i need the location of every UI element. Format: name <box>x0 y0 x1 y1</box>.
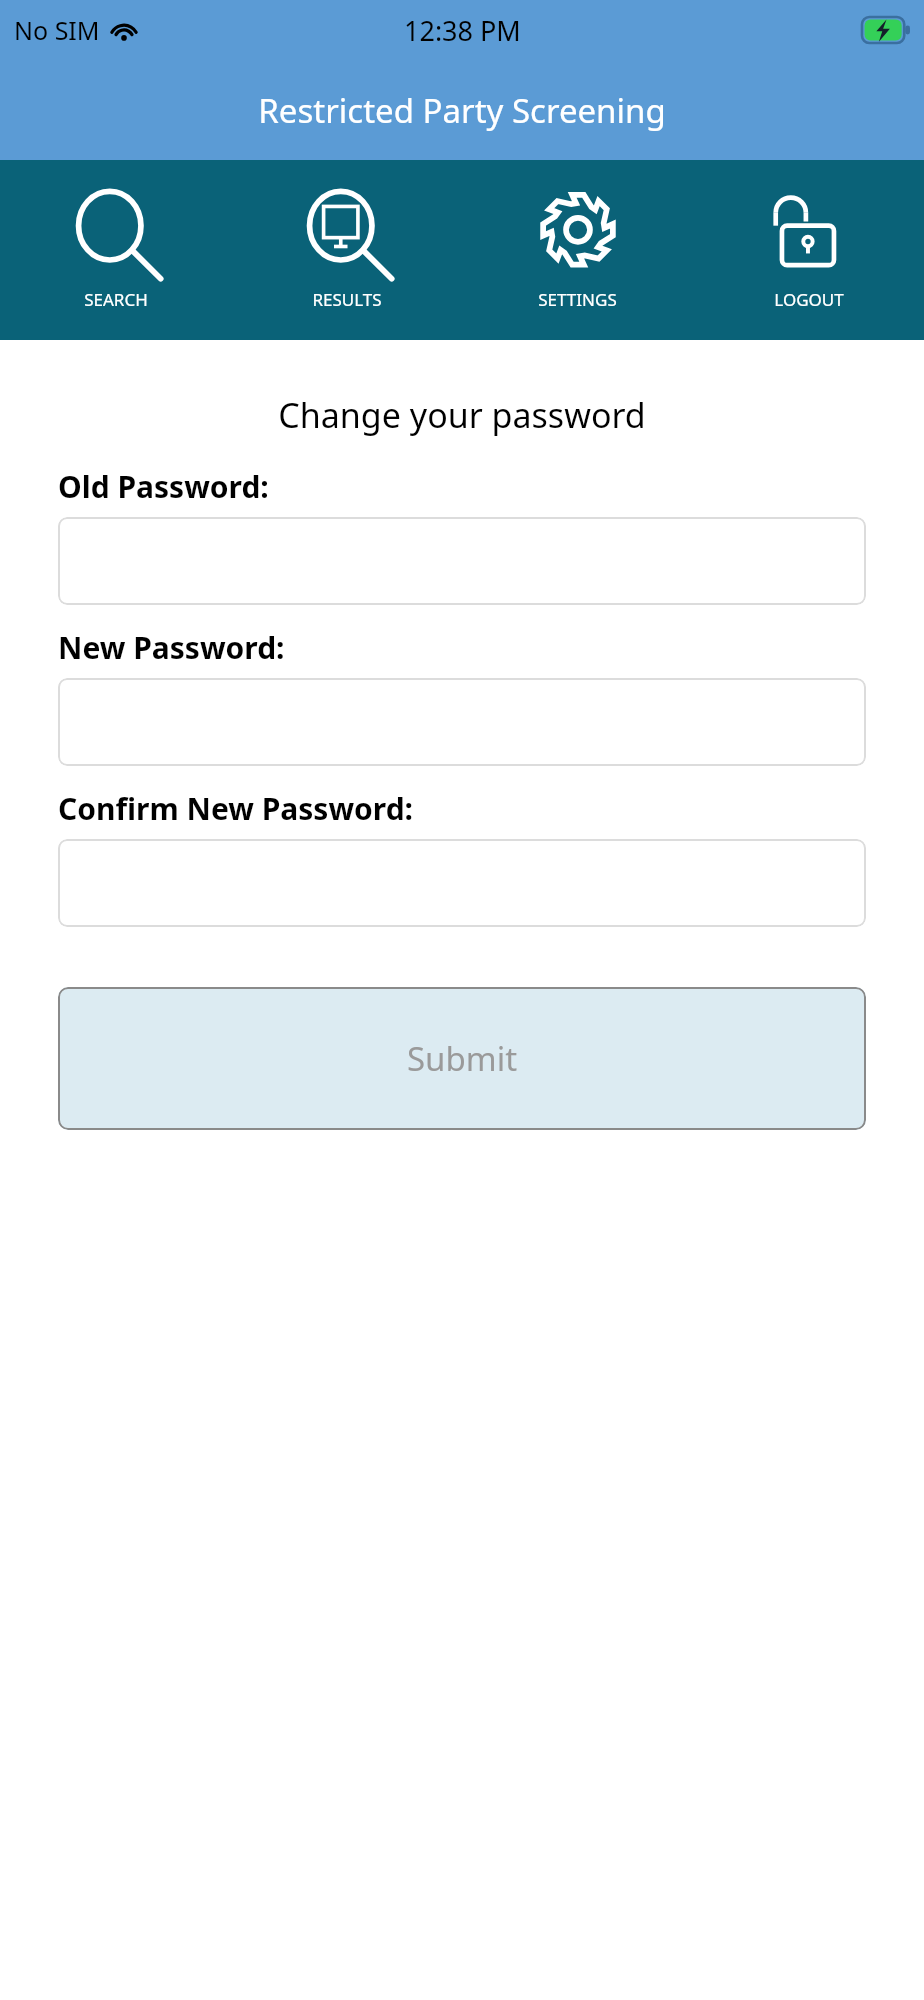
button[interactable]: Submit <box>58 987 866 1130</box>
staticText: Change your password <box>0 392 924 438</box>
staticText: Confirm New Password: <box>58 788 414 829</box>
staticText: New Password: <box>58 627 285 668</box>
staticText: Old Password: <box>58 466 269 507</box>
staticText: Restricted Party Screening <box>258 88 666 133</box>
staticText: SETTINGS <box>538 288 617 311</box>
staticText: 12:38 PM <box>404 12 521 49</box>
staticText: Submit <box>407 1036 518 1081</box>
button[interactable]: Confirm New Password: <box>58 839 866 927</box>
staticText: RESULTS <box>312 288 382 311</box>
staticText: SEARCH <box>84 288 148 311</box>
staticText: No SIM <box>14 13 100 47</box>
button[interactable]: New Password: <box>58 678 866 766</box>
button[interactable]: Old Password: <box>58 517 866 605</box>
button[interactable]: LOGOUT <box>693 160 924 340</box>
button[interactable]: RESULTS <box>231 160 462 340</box>
staticText: LOGOUT <box>774 288 844 311</box>
button[interactable]: SEARCH <box>0 160 231 340</box>
button[interactable]: SETTINGS <box>462 160 693 340</box>
